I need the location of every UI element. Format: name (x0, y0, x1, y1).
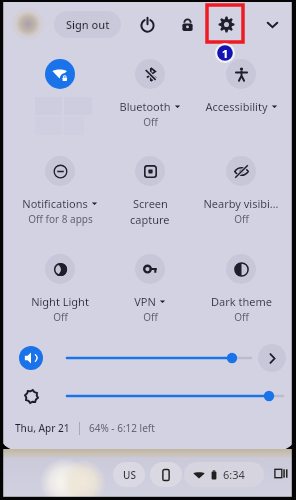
button[interactable]: Tile (226, 254, 256, 284)
staticText: Off (143, 310, 158, 324)
staticText: 6:34 (223, 467, 245, 482)
button[interactable]: Sign out (54, 11, 121, 38)
staticText: capture (130, 212, 170, 227)
button[interactable]: Phone hub (150, 462, 182, 487)
button[interactable]: Tile (45, 156, 75, 186)
button[interactable]: Tile (45, 254, 75, 284)
staticText: Off (143, 115, 158, 129)
staticText: Off (234, 310, 249, 324)
button[interactable]: Tile (45, 59, 75, 89)
staticText: Notifications (22, 196, 88, 211)
button[interactable]: Tile (135, 254, 165, 284)
staticText: Off for 8 apps (28, 212, 93, 226)
button[interactable]: Tile (226, 156, 256, 186)
button[interactable]: Tile (226, 59, 256, 89)
button[interactable]: Account (11, 7, 45, 41)
button[interactable]: Settings (211, 9, 241, 39)
button[interactable]: Collapse (257, 9, 287, 39)
staticText: Nearby visibi… (203, 196, 279, 211)
button[interactable]: Tile (135, 59, 165, 89)
staticText: Bluetooth (119, 99, 171, 114)
staticText: Night Light (31, 294, 89, 309)
staticText: 64% - 6:12 left (89, 421, 155, 435)
button[interactable]: Audio settings (258, 344, 286, 372)
button[interactable]: Brightness (19, 384, 43, 408)
staticText: Accessibility (205, 99, 268, 114)
button[interactable]: Tile (135, 156, 165, 186)
button[interactable]: Power (132, 9, 162, 39)
button[interactable]: Overview (272, 464, 291, 483)
button[interactable]: Lock screen (172, 9, 202, 39)
staticText: Off (234, 212, 249, 226)
staticText: 1 (222, 46, 229, 61)
staticText: Dark theme (211, 294, 272, 309)
staticText: Off (53, 310, 68, 324)
staticText: VPN (134, 294, 156, 309)
staticText: Screen (133, 196, 168, 211)
staticText: Sign out (66, 17, 110, 32)
button[interactable]: 6:34 (184, 462, 264, 487)
button[interactable]: Volume (19, 346, 43, 370)
staticText: US (123, 468, 136, 482)
button[interactable]: US (113, 462, 145, 487)
staticText: Thu, Apr 21 (15, 421, 70, 435)
